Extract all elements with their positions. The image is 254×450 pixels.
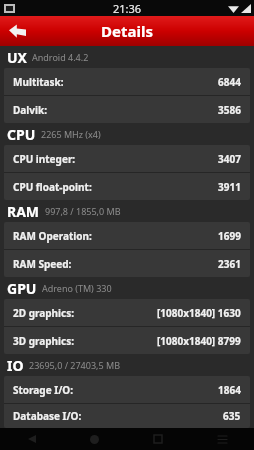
button[interactable]: 2D graphics: (4, 299, 250, 326)
button[interactable]: Back (0, 16, 34, 46)
staticText: 2361 (218, 257, 241, 271)
staticText: CPU integer: (13, 152, 76, 166)
staticText: 1864 (218, 383, 241, 397)
staticText: 3407 (218, 152, 241, 166)
staticText: [1080x1840] 8799 (157, 334, 241, 348)
staticText: Multitask: (13, 75, 64, 89)
button[interactable]: RAM Operation: (4, 222, 250, 249)
staticText: 2265 MHz (x4) (41, 128, 101, 140)
button[interactable]: RAM Speed: (4, 250, 250, 277)
staticText: IO (7, 356, 24, 375)
staticText: 2D graphics: (13, 306, 75, 320)
staticText: 6844 (218, 75, 241, 89)
staticText: 997,8 / 1855,0 MB (45, 205, 121, 217)
button[interactable]: CPU float-point: (4, 173, 250, 200)
button[interactable]: Home (63, 428, 126, 450)
staticText: Dalvik: (13, 103, 47, 117)
staticText: Adreno (TM) 330 (42, 282, 112, 294)
button[interactable]: Dalvik: (4, 96, 250, 123)
button[interactable]: Recents (126, 428, 190, 450)
staticText: 3911 (218, 180, 241, 194)
button[interactable]: 3D graphics: (4, 327, 250, 354)
staticText: CPU float-point: (13, 180, 92, 194)
staticText: 23695,0 / 27403,5 MB (29, 359, 120, 371)
button[interactable]: Multitask: (4, 68, 250, 95)
button[interactable]: Storage I/O: (4, 376, 250, 403)
staticText: RAM Operation: (13, 229, 92, 243)
staticText: 635 (223, 409, 241, 423)
button[interactable]: CPU integer: (4, 145, 250, 172)
staticText: [1080x1840] 1630 (157, 306, 241, 320)
staticText: Details (101, 21, 153, 41)
staticText: 1699 (218, 229, 241, 243)
staticText: CPU (7, 125, 36, 144)
staticText: UX (7, 48, 27, 67)
button[interactable]: Database I/O: (4, 404, 250, 428)
staticText: RAM (7, 202, 40, 221)
staticText: Database I/O: (13, 409, 82, 423)
staticText: 21:36 (113, 1, 142, 16)
staticText: Android 4.4.2 (32, 51, 89, 63)
staticText: 3D graphics: (13, 334, 75, 348)
staticText: 3586 (218, 103, 241, 117)
staticText: GPU (7, 279, 37, 298)
staticText: RAM Speed: (13, 257, 72, 271)
staticText: Storage I/O: (13, 383, 74, 397)
button[interactable]: Back (0, 428, 63, 450)
